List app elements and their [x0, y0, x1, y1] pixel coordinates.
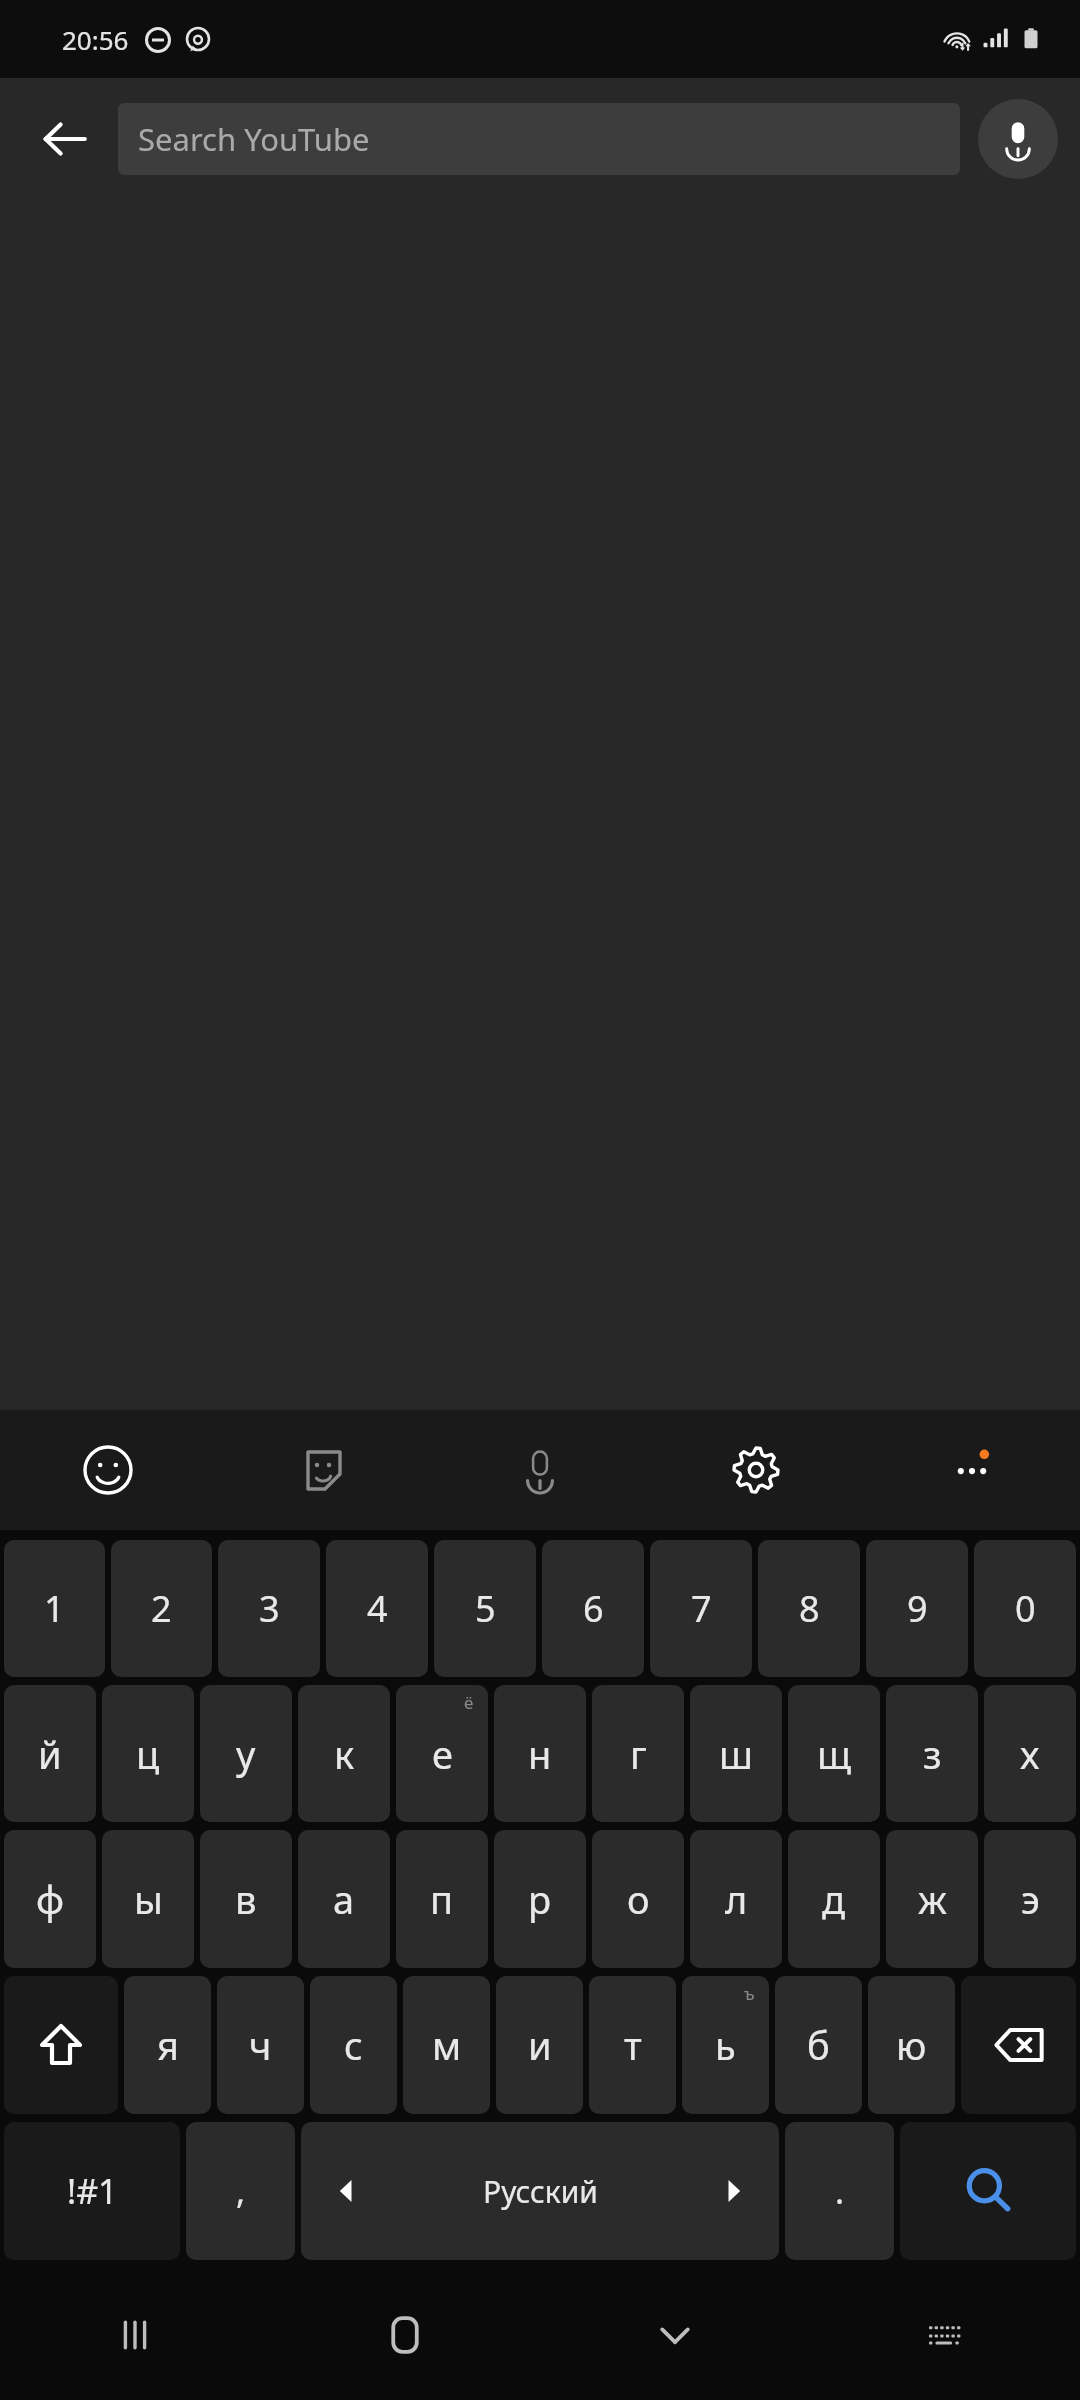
button[interactable]: Home: [270, 2270, 540, 2400]
staticText: ш: [719, 1728, 753, 1780]
staticText: 3: [259, 1584, 280, 1633]
staticText: ф: [36, 1873, 65, 1925]
button[interactable]: с: [310, 1976, 397, 2114]
button[interactable]: ы: [102, 1830, 194, 1968]
button[interactable]: ж: [886, 1830, 978, 1968]
button[interactable]: ш: [690, 1685, 782, 1822]
button[interactable]: ф: [4, 1830, 96, 1968]
staticText: щ: [817, 1728, 852, 1780]
button[interactable]: Search: [900, 2122, 1076, 2260]
button[interactable]: е: [396, 1685, 488, 1822]
button[interactable]: э: [984, 1830, 1076, 1968]
staticText: г: [630, 1728, 647, 1780]
staticText: с: [344, 2019, 363, 2071]
button[interactable]: к: [298, 1685, 390, 1822]
button[interactable]: и: [496, 1976, 583, 2114]
button[interactable]: 5: [434, 1540, 536, 1677]
button[interactable]: н: [494, 1685, 586, 1822]
staticText: з: [923, 1728, 942, 1780]
button[interactable]: ю: [868, 1976, 955, 2114]
staticText: 1: [44, 1584, 65, 1633]
button[interactable]: д: [788, 1830, 880, 1968]
button[interactable]: Back: [22, 96, 108, 182]
button[interactable]: в: [200, 1830, 292, 1968]
button[interactable]: ь: [682, 1976, 769, 2114]
staticText: п: [430, 1873, 454, 1925]
button[interactable]: й: [4, 1685, 96, 1822]
button[interactable]: 9: [866, 1540, 968, 1677]
staticText: Русский: [483, 2171, 598, 2212]
button[interactable]: г: [592, 1685, 684, 1822]
button[interactable]: Search YouTube: [118, 103, 960, 175]
button[interactable]: Stickers: [216, 1410, 432, 1530]
button[interactable]: Backspace: [961, 1976, 1076, 2114]
staticText: 7: [691, 1584, 712, 1633]
staticText: у: [236, 1728, 256, 1780]
button[interactable]: !#1: [4, 2122, 180, 2260]
button[interactable]: .: [785, 2122, 894, 2260]
button[interactable]: Switch keyboard: [810, 2270, 1080, 2400]
button[interactable]: Keyboard settings: [648, 1410, 864, 1530]
staticText: ь: [715, 2019, 736, 2071]
button[interactable]: 2: [111, 1540, 212, 1677]
staticText: л: [725, 1873, 748, 1925]
staticText: я: [157, 2019, 179, 2071]
staticText: .: [835, 2168, 845, 2214]
button[interactable]: ,: [186, 2122, 295, 2260]
button[interactable]: з: [886, 1685, 978, 1822]
staticText: а: [333, 1873, 355, 1925]
button[interactable]: 1: [4, 1540, 105, 1677]
button[interactable]: Emoji: [0, 1410, 216, 1530]
button[interactable]: Hide keyboard: [540, 2270, 810, 2400]
staticText: т: [624, 2019, 642, 2071]
button[interactable]: More options: [864, 1410, 1080, 1530]
staticText: х: [1020, 1728, 1040, 1780]
button[interactable]: р: [494, 1830, 586, 1968]
staticText: 2: [151, 1584, 172, 1633]
button[interactable]: Recent apps: [0, 2270, 270, 2400]
staticText: ц: [136, 1728, 160, 1780]
staticText: е: [432, 1728, 453, 1780]
staticText: ъ: [744, 1982, 755, 2005]
staticText: 9: [907, 1584, 928, 1633]
staticText: э: [1021, 1873, 1040, 1925]
staticText: в: [235, 1873, 257, 1925]
button[interactable]: б: [775, 1976, 862, 2114]
button[interactable]: ч: [217, 1976, 304, 2114]
button[interactable]: щ: [788, 1685, 880, 1822]
button[interactable]: 4: [326, 1540, 428, 1677]
button[interactable]: 7: [650, 1540, 752, 1677]
button[interactable]: м: [403, 1976, 490, 2114]
staticText: д: [822, 1873, 846, 1925]
button[interactable]: Shift: [4, 1976, 118, 2114]
staticText: ю: [896, 2019, 927, 2071]
button[interactable]: 6: [542, 1540, 644, 1677]
button[interactable]: 8: [758, 1540, 860, 1677]
staticText: ч: [249, 2019, 272, 2071]
staticText: м: [432, 2019, 462, 2071]
button[interactable]: ц: [102, 1685, 194, 1822]
button[interactable]: я: [124, 1976, 211, 2114]
staticText: ,: [236, 2168, 246, 2214]
button[interactable]: х: [984, 1685, 1076, 1822]
button[interactable]: л: [690, 1830, 782, 1968]
button[interactable]: т: [589, 1976, 676, 2114]
button[interactable]: Русский: [301, 2122, 779, 2260]
button[interactable]: а: [298, 1830, 390, 1968]
button[interactable]: Voice search: [978, 99, 1058, 179]
button[interactable]: о: [592, 1830, 684, 1968]
staticText: ё: [464, 1691, 474, 1714]
button[interactable]: 3: [218, 1540, 320, 1677]
button[interactable]: Voice input: [432, 1410, 648, 1530]
staticText: ы: [134, 1873, 163, 1925]
button[interactable]: у: [200, 1685, 292, 1822]
staticText: Search YouTube: [138, 118, 370, 160]
staticText: б: [807, 2019, 830, 2071]
button[interactable]: 0: [974, 1540, 1076, 1677]
button[interactable]: п: [396, 1830, 488, 1968]
staticText: р: [528, 1873, 552, 1925]
staticText: й: [38, 1728, 62, 1780]
staticText: 8: [799, 1584, 820, 1633]
staticText: 5: [475, 1584, 496, 1633]
staticText: 4: [367, 1584, 388, 1633]
